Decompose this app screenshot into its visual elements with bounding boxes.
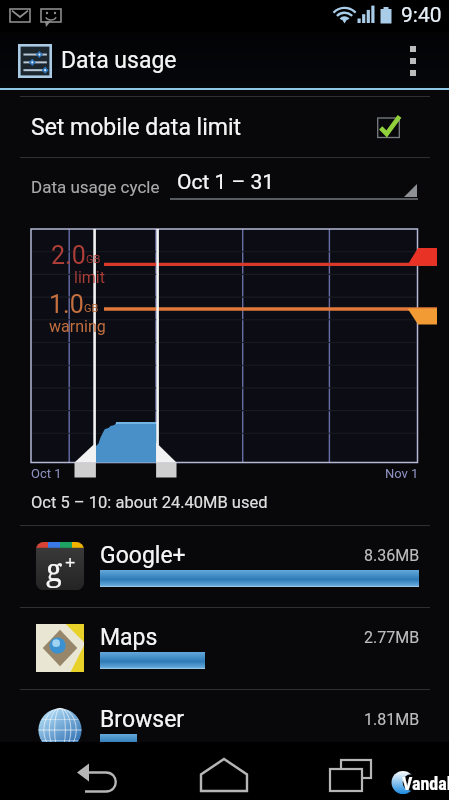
staticText: 1.0 [49,290,84,319]
button[interactable]: Maps [0,608,449,689]
staticText: 1.81MB [364,710,420,729]
button[interactable]: Home [195,752,253,792]
button[interactable]: Back [64,752,134,792]
button[interactable]: Recents [322,752,380,792]
button[interactable]: g [0,526,449,607]
staticText: warning [49,317,106,336]
staticText: Maps [100,624,158,651]
button[interactable]: Browser [0,690,449,771]
staticText: 8.36MB [364,546,420,565]
staticText: Data usage cycle [31,177,160,197]
staticText: Oct 5 – 10: about 24.40MB used [31,493,268,512]
staticText: Browser [100,706,185,733]
button[interactable]: Oct 1 – 31 [170,158,418,214]
staticText: + [65,550,76,575]
staticText: Nov 1 [385,466,419,481]
staticText: Data usage [61,47,177,74]
staticText: Oct 1 – 31 [177,170,275,195]
staticText: Google+ [100,542,186,569]
staticText: 2.0 [51,241,86,270]
staticText: g [46,549,63,590]
button[interactable]: Set mobile data limit [0,97,449,157]
staticText: 9:40 [401,3,442,28]
staticText: Vandal [402,773,449,794]
staticText: Set mobile data limit [31,114,242,141]
staticText: limit [74,268,105,287]
staticText: GB [86,253,101,266]
staticText: 2.77MB [364,628,420,647]
staticText: GB [84,302,99,315]
staticText: Oct 1 [31,466,62,481]
button[interactable]: More options [391,32,435,90]
